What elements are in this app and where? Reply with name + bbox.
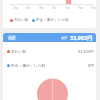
staticText: 貯金（累計）した額 — [11, 63, 46, 67]
staticText: 33,903円 — [70, 34, 93, 41]
button[interactable]: 7月 — [3, 0, 96, 28]
staticText: 7月 — [65, 6, 71, 10]
staticText: 7月 — [91, 6, 96, 10]
staticText: 支払い額 — [11, 49, 27, 53]
staticText: 合計 — [61, 36, 68, 40]
staticText: 支払い額 — [14, 18, 29, 22]
staticText: 0円 — [88, 63, 94, 67]
staticText: 7月 — [26, 6, 32, 10]
staticText: 33,903円 — [78, 49, 94, 53]
button[interactable]: 支払い額 — [3, 49, 96, 53]
staticText: 7月 — [13, 6, 19, 10]
staticText: 7月 — [78, 6, 84, 10]
staticText: 7月 — [52, 6, 58, 10]
staticText: 7月 — [39, 6, 45, 10]
staticText: 貯金（累計）した額 — [36, 18, 69, 22]
staticText: 合計 — [8, 35, 16, 40]
button[interactable]: 貯金（累計）した額 — [3, 63, 96, 67]
button[interactable]: 合計 — [3, 33, 96, 42]
